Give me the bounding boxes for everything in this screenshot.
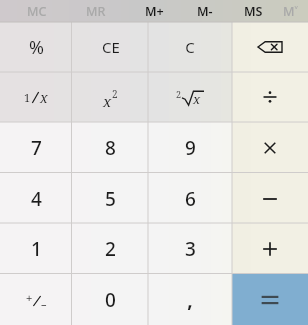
button[interactable]: C [148,22,232,72]
button[interactable]: 4 [0,173,72,224]
staticText: – [41,296,47,311]
button[interactable]: M- [182,0,228,22]
button[interactable]: 7 [0,122,72,173]
staticText: M+ [145,3,164,20]
staticText: M˅ [283,3,299,20]
button[interactable]: MS [230,0,276,22]
staticText: + [26,290,33,305]
staticText: 0 [105,287,116,313]
button[interactable]: M+ [131,0,177,22]
button[interactable]: Equals [232,274,308,325]
button[interactable]: 2 [148,72,232,122]
staticText: 2 [176,88,182,100]
staticText: % [29,35,44,60]
staticText: 9 [185,135,196,161]
staticText: CE [102,37,120,57]
staticText: MR [86,3,106,20]
button[interactable]: Plus minus sign [0,274,72,325]
button[interactable]: 1 [0,72,72,122]
staticText: 3 [185,236,196,262]
staticText: 2 [112,87,118,101]
button[interactable]: 2 [72,223,149,274]
button[interactable]: x [72,72,149,122]
staticText: 1 [24,90,31,105]
button[interactable]: 6 [148,173,232,224]
staticText: x [193,90,201,108]
staticText: 5 [105,186,116,212]
button[interactable]: Divide [232,72,308,122]
button[interactable]: 0 [72,274,149,325]
button[interactable]: 8 [72,122,149,173]
button[interactable]: 1 [0,223,72,274]
staticText: 7 [31,135,42,161]
staticText: C [185,37,195,57]
staticText: 2 [105,236,116,262]
staticText: MC [27,3,47,20]
staticText: M- [197,3,213,20]
staticText: MS [244,3,263,20]
button[interactable]: M˅ [268,0,308,22]
button[interactable]: % [0,22,72,72]
button[interactable]: Multiply [232,122,308,173]
button[interactable]: 5 [72,173,149,224]
staticText: 6 [185,186,196,212]
staticText: , [187,287,193,313]
button[interactable]: MR [73,0,119,22]
button[interactable]: , [148,274,232,325]
staticText: x [103,91,112,111]
button[interactable]: Backspace [232,22,308,72]
staticText: x [40,88,48,107]
button[interactable]: 3 [148,223,232,274]
button[interactable]: Plus [232,223,308,274]
button[interactable]: 9 [148,122,232,173]
staticText: 4 [31,186,42,212]
button[interactable]: MC [14,0,60,22]
button[interactable]: CE [72,22,149,72]
staticText: 8 [105,135,116,161]
button[interactable]: Minus [232,173,308,224]
staticText: 1 [31,236,42,262]
